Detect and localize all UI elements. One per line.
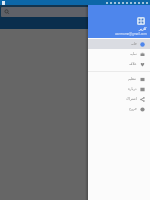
button[interactable]: خانه	[88, 39, 150, 49]
staticText: کاربر	[139, 27, 147, 31]
staticText: خروج	[129, 107, 137, 111]
button[interactable]: تنظیم	[88, 74, 150, 84]
staticText: نمایه	[130, 52, 137, 56]
button[interactable]: Profile photo	[137, 17, 145, 25]
staticText: علاقه	[129, 62, 137, 66]
staticText: username@gmail.com	[115, 32, 147, 36]
button[interactable]: اشتراک	[88, 94, 150, 104]
staticText: خانه	[131, 42, 137, 46]
staticText: تنظیم	[128, 77, 137, 81]
staticText: اشتراک	[126, 97, 137, 101]
button[interactable]: خروج	[88, 104, 150, 114]
button[interactable]: Search	[1, 7, 149, 17]
button[interactable]: علاقه	[88, 59, 150, 69]
staticText: درباره	[128, 87, 137, 91]
button[interactable]: نمایه	[88, 49, 150, 59]
button[interactable]: درباره	[88, 84, 150, 94]
